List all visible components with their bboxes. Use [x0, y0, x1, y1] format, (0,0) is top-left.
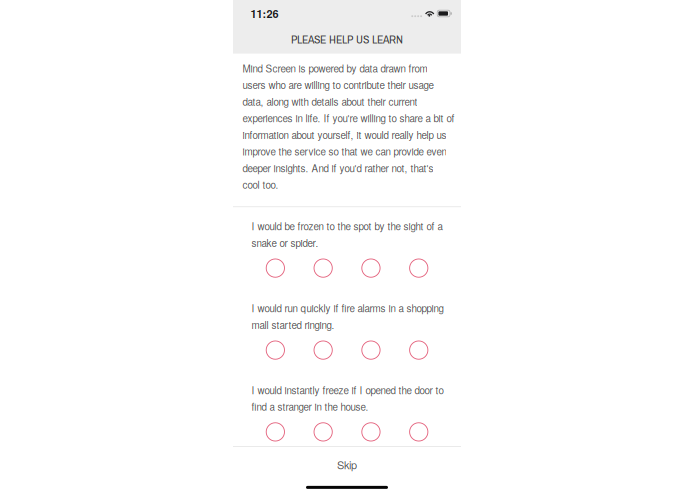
staticText: 11:26 — [250, 6, 278, 21]
button[interactable]: Select answer — [347, 336, 395, 364]
button[interactable]: Select answer — [347, 254, 395, 282]
staticText: Mind Screen is powered by data drawn fro… — [242, 61, 454, 192]
button[interactable]: Skip — [233, 449, 461, 481]
button[interactable]: Select answer — [395, 336, 443, 364]
button[interactable]: Select answer — [395, 418, 443, 446]
button[interactable]: Select answer — [299, 254, 347, 282]
button[interactable]: Select answer — [395, 254, 443, 282]
button[interactable]: Select answer — [299, 418, 347, 446]
staticText: I would be frozen to the spot by the sig… — [251, 219, 442, 250]
staticText: I would instantly freeze if I opened the… — [251, 383, 443, 414]
staticText: PLEASE HELP US LEARN — [291, 31, 403, 47]
button[interactable]: Select answer — [251, 336, 299, 364]
staticText: I would run quickly if fire alarms in a … — [251, 301, 443, 332]
button[interactable]: Select answer — [251, 418, 299, 446]
button[interactable]: Select answer — [299, 336, 347, 364]
staticText: Skip — [337, 457, 357, 472]
button[interactable]: Select answer — [251, 254, 299, 282]
button[interactable]: Select answer — [347, 418, 395, 446]
